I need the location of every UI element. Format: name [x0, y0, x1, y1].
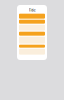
- staticText: Title: [28, 7, 35, 13]
